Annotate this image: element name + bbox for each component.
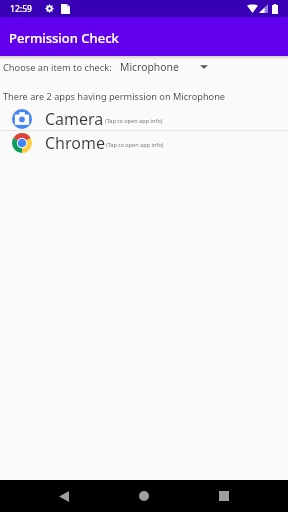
button[interactable]: Camera bbox=[0, 107, 288, 130]
staticText: Permission Check bbox=[9, 29, 119, 47]
staticText: Camera bbox=[45, 108, 104, 130]
staticText: (Tap to open app info) bbox=[105, 117, 163, 125]
staticText: (Tap to open app info) bbox=[106, 141, 164, 149]
staticText: Chrome bbox=[45, 132, 105, 154]
staticText: There are 2 apps having permission on Mi… bbox=[3, 90, 225, 103]
button[interactable]: Home bbox=[128, 480, 160, 512]
staticText: 12:59 bbox=[10, 3, 33, 15]
staticText: Choose an item to check: bbox=[3, 61, 112, 74]
button[interactable]: Chrome bbox=[0, 131, 288, 154]
button[interactable]: Recent apps bbox=[160, 480, 288, 512]
staticText: Microphone bbox=[120, 60, 179, 74]
button[interactable]: Microphone bbox=[118, 58, 210, 76]
button[interactable]: Back bbox=[0, 480, 128, 512]
